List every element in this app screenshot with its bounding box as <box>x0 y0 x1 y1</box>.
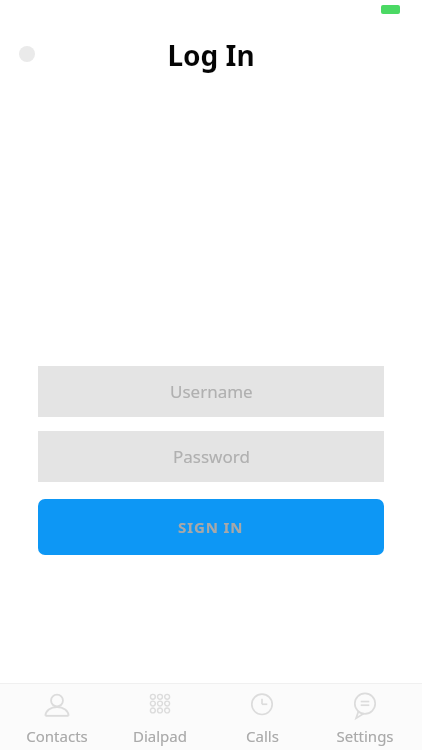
staticText: Settings <box>336 726 394 746</box>
button[interactable]: Menu <box>19 46 35 62</box>
staticText: Dialpad <box>133 726 187 746</box>
button[interactable]: Contacts <box>12 684 102 746</box>
button[interactable]: Settings <box>320 684 410 746</box>
button[interactable]: Dialpad <box>115 684 205 746</box>
staticText: Username <box>170 380 253 403</box>
staticText: Contacts <box>26 726 88 746</box>
button[interactable]: Username <box>38 366 384 417</box>
staticText: Password <box>173 445 250 468</box>
staticText: SIGN IN <box>178 517 244 537</box>
button[interactable]: SIGN IN <box>38 499 384 555</box>
staticText: Log In <box>167 36 255 74</box>
button[interactable]: Password <box>38 431 384 482</box>
button[interactable]: Calls <box>217 684 307 746</box>
staticText: Calls <box>246 726 279 746</box>
